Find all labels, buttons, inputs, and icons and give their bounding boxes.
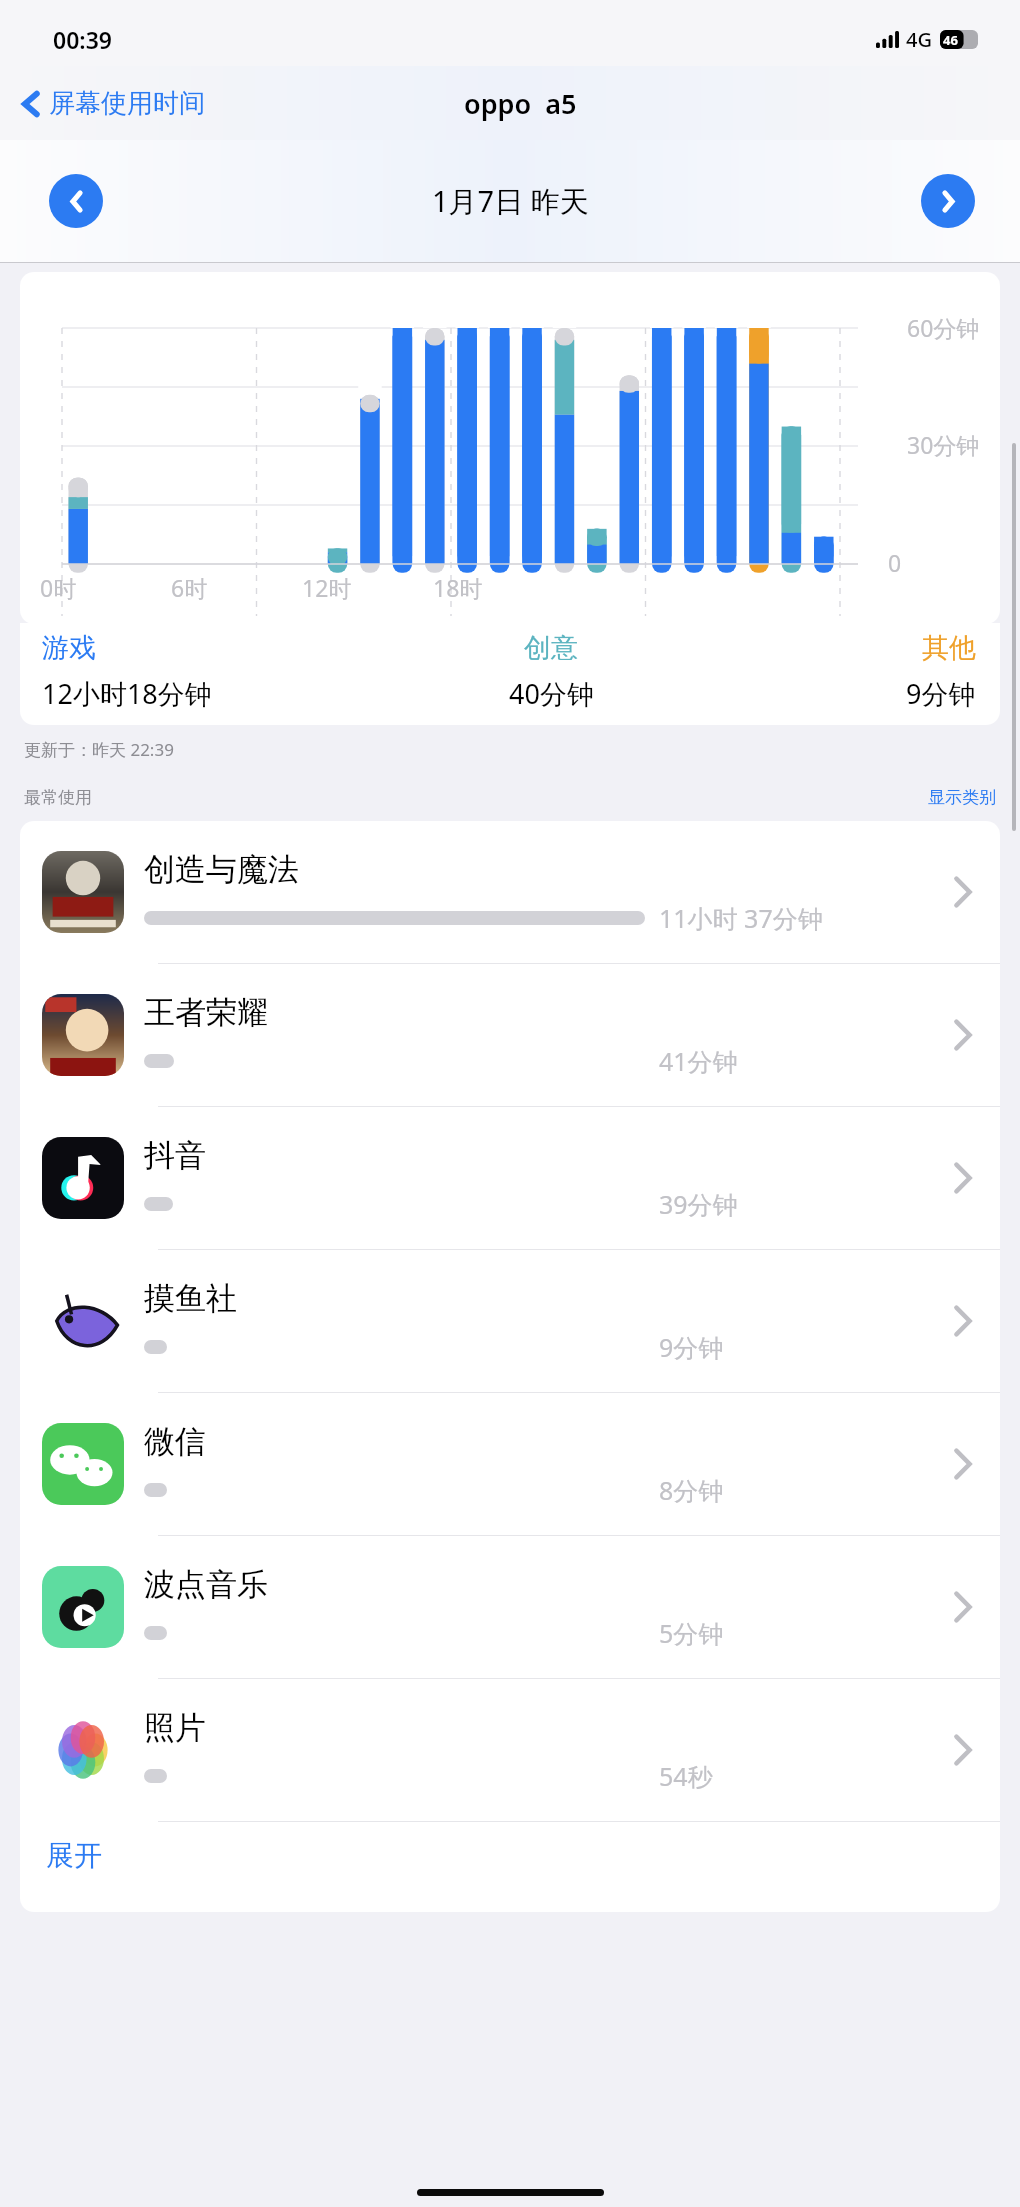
staticText: 微信 bbox=[144, 1422, 206, 1461]
button[interactable]: 创造与魔法 bbox=[20, 821, 1000, 963]
staticText: 12小时18分钟 bbox=[42, 675, 212, 712]
staticText: 9分钟 bbox=[906, 675, 976, 712]
staticText: 其他 bbox=[922, 631, 976, 665]
staticText: 更新于：昨天 22:39 bbox=[24, 738, 174, 761]
button[interactable]: 展开 bbox=[20, 1822, 1000, 1912]
staticText: 11小时 37分钟 bbox=[659, 901, 823, 935]
button[interactable]: 显示类别 bbox=[928, 787, 996, 808]
staticText: 抖音 bbox=[144, 1136, 206, 1175]
staticText: 创造与魔法 bbox=[144, 850, 299, 889]
staticText: 54秒 bbox=[659, 1759, 713, 1793]
staticText: 展开 bbox=[46, 1838, 102, 1873]
button[interactable]: 摸鱼社 bbox=[20, 1250, 1000, 1392]
button[interactable]: 屏幕使用时间 bbox=[16, 79, 211, 128]
staticText: 8分钟 bbox=[659, 1473, 724, 1507]
staticText: 5分钟 bbox=[659, 1616, 724, 1650]
staticText: 40分钟 bbox=[509, 675, 594, 712]
staticText: 0时 bbox=[40, 572, 77, 603]
staticText: 30分钟 bbox=[907, 429, 980, 460]
staticText: 12时 bbox=[302, 572, 352, 603]
staticText: 波点音乐 bbox=[144, 1565, 268, 1604]
button[interactable]: 照片 bbox=[20, 1679, 1000, 1821]
staticText: 创意 bbox=[524, 631, 578, 665]
button[interactable]: Next day bbox=[921, 174, 975, 228]
button[interactable]: 王者荣耀 bbox=[20, 964, 1000, 1106]
staticText: 王者荣耀 bbox=[144, 993, 268, 1032]
staticText: 41分钟 bbox=[659, 1044, 738, 1078]
staticText: 游戏 bbox=[42, 631, 96, 665]
staticText: 显示类别 bbox=[928, 787, 996, 808]
staticText: 6时 bbox=[171, 572, 208, 603]
staticText: 0 bbox=[888, 547, 902, 578]
staticText: oppo a5 bbox=[464, 85, 577, 122]
staticText: 1月7日 昨天 bbox=[432, 181, 589, 221]
staticText: 39分钟 bbox=[659, 1187, 738, 1221]
staticText: 46 bbox=[943, 31, 958, 49]
staticText: 4G bbox=[906, 26, 932, 53]
staticText: 最常使用 bbox=[24, 787, 92, 808]
staticText: 60分钟 bbox=[907, 312, 980, 343]
staticText: 摸鱼社 bbox=[144, 1279, 237, 1318]
button[interactable]: 微信 bbox=[20, 1393, 1000, 1535]
staticText: 9分钟 bbox=[659, 1330, 724, 1364]
staticText: 照片 bbox=[144, 1708, 206, 1747]
button[interactable]: 抖音 bbox=[20, 1107, 1000, 1249]
staticText: 18时 bbox=[433, 572, 483, 603]
staticText: 屏幕使用时间 bbox=[49, 87, 205, 120]
staticText: 00:39 bbox=[53, 24, 112, 55]
button[interactable]: 波点音乐 bbox=[20, 1536, 1000, 1678]
button[interactable]: Previous day bbox=[49, 174, 103, 228]
